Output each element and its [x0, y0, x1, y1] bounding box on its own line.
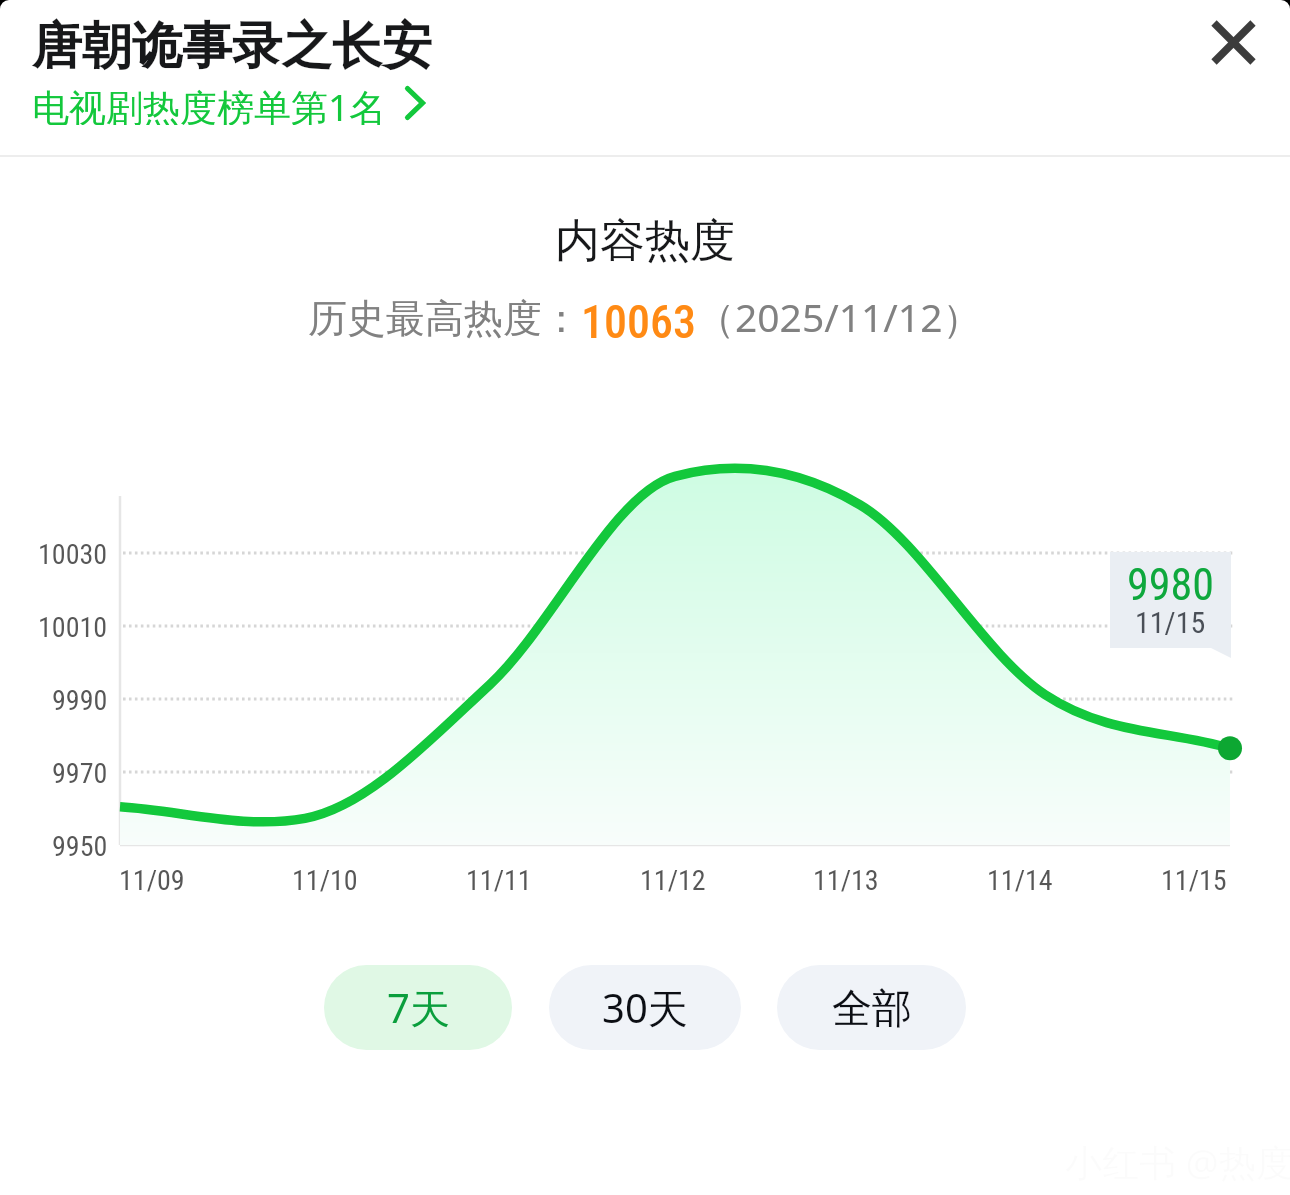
staticText: 9980 [1127, 559, 1214, 609]
button[interactable]: 7天 [324, 965, 512, 1050]
staticText: 唐朝诡事录之长安 [32, 15, 432, 78]
staticText: 11/09 [119, 864, 185, 897]
staticText: 10030 [38, 538, 108, 571]
staticText: 内容热度 [0, 213, 1290, 270]
staticText: 9990 [52, 684, 108, 717]
staticText: 11/11 [466, 864, 532, 897]
staticText: 11/13 [813, 864, 879, 897]
staticText: 9970 [52, 757, 108, 790]
staticText: 全部 [832, 983, 912, 1033]
staticText: 30天 [602, 980, 688, 1035]
button[interactable]: 30天 [549, 965, 741, 1050]
staticText: 9950 [52, 830, 108, 863]
staticText: 10063 [581, 295, 696, 349]
staticText: 电视剧热度榜单第1名 [32, 81, 387, 125]
staticText: 历史最高热度： [308, 294, 581, 343]
button[interactable]: 全部 [777, 965, 966, 1050]
staticText: 10010 [38, 611, 108, 644]
staticText: （2025/11/12） [696, 290, 982, 343]
button[interactable]: 电视剧热度榜单第1名 [32, 81, 424, 125]
staticText: 7天 [387, 980, 450, 1035]
staticText: 11/10 [292, 864, 358, 897]
staticText: 11/15 [1161, 864, 1227, 897]
button[interactable]: Close [1196, 5, 1270, 79]
staticText: 11/15 [1135, 605, 1206, 640]
staticText: 11/14 [987, 864, 1053, 897]
staticText: 11/12 [640, 864, 706, 897]
